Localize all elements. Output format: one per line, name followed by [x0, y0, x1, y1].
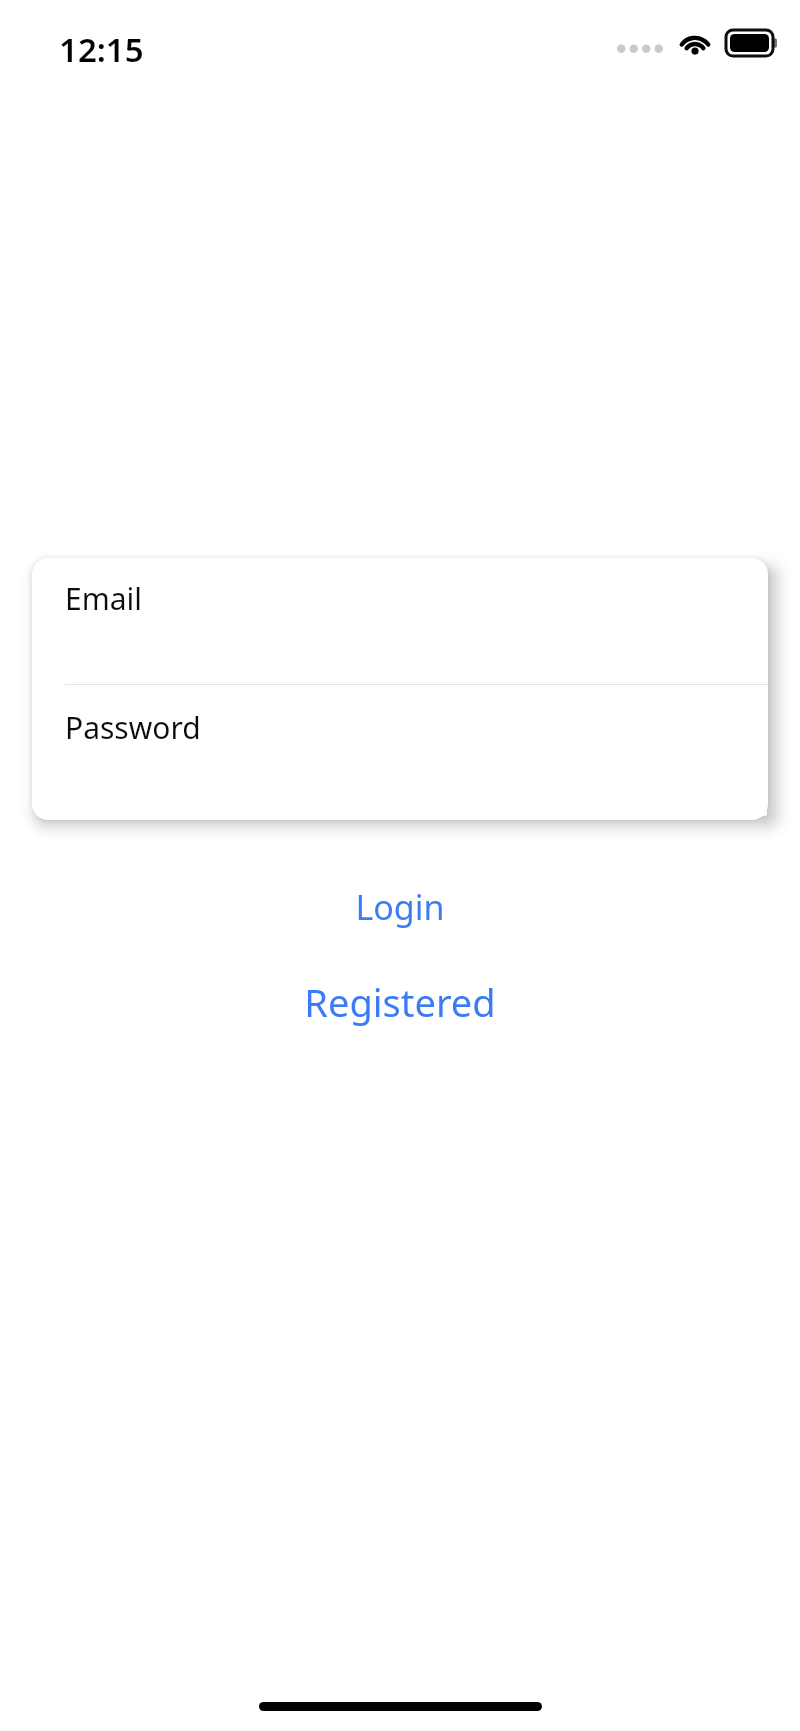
- button[interactable]: Registered: [0, 970, 800, 1034]
- staticText: Email: [65, 578, 143, 619]
- staticText: Password: [65, 707, 201, 748]
- button[interactable]: Password: [32, 685, 768, 820]
- staticText: Registered: [304, 976, 496, 1028]
- button[interactable]: Login: [0, 878, 800, 936]
- staticText: 12:15: [59, 27, 144, 72]
- staticText: Login: [355, 884, 445, 930]
- button[interactable]: Email: [32, 558, 768, 684]
